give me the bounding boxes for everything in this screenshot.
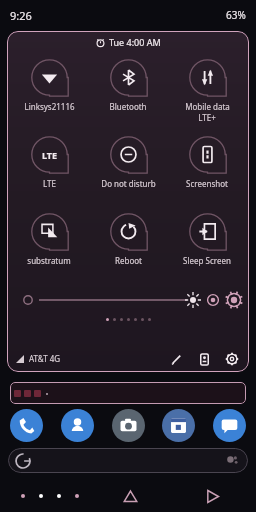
staticText: LTE (42, 149, 58, 161)
staticText: Sleep Screen (183, 255, 231, 266)
staticText: Do not disturb (101, 178, 156, 189)
button[interactable]: Calendar (162, 409, 195, 442)
staticText: 63% (226, 8, 246, 22)
staticText: Linksys21116 (24, 101, 75, 112)
staticText: substratum (27, 255, 71, 266)
button[interactable]: Edit tiles (166, 349, 186, 369)
staticText: Reboot (115, 255, 142, 266)
staticText: AT&T 4G (29, 353, 61, 364)
button[interactable]: Notifications (10, 382, 246, 404)
button[interactable]: Bluetooth (91, 56, 165, 112)
button[interactable]: Camera (112, 409, 145, 442)
button[interactable]: Linksys21116 (12, 56, 86, 112)
staticText: Mobile data (185, 101, 230, 112)
button[interactable]: Brightness (7, 288, 249, 312)
button[interactable]: Mobile data (170, 56, 244, 123)
button[interactable]: Back (201, 485, 223, 507)
button[interactable]: Phone (10, 409, 43, 442)
button[interactable]: Messages (213, 409, 246, 442)
staticText: LTE (43, 178, 56, 189)
button[interactable]: Search (8, 448, 248, 473)
button[interactable]: Do not disturb (91, 133, 165, 189)
button[interactable]: Sleep Screen (170, 210, 244, 266)
button[interactable]: Contacts (61, 409, 94, 442)
button[interactable]: Home (119, 485, 141, 507)
staticText: Tue 4:00 AM (109, 36, 161, 48)
button[interactable]: Users (194, 349, 214, 369)
button[interactable]: Settings (222, 349, 242, 369)
button[interactable]: Screenshot (170, 133, 244, 189)
staticText: 9:26 (10, 8, 32, 23)
staticText: LTE+ (198, 112, 216, 123)
button[interactable]: LTE (12, 133, 86, 189)
button[interactable]: Reboot (91, 210, 165, 266)
button[interactable]: substratum (12, 210, 86, 266)
staticText: Bluetooth (109, 101, 147, 112)
staticText: Screenshot (186, 178, 228, 189)
